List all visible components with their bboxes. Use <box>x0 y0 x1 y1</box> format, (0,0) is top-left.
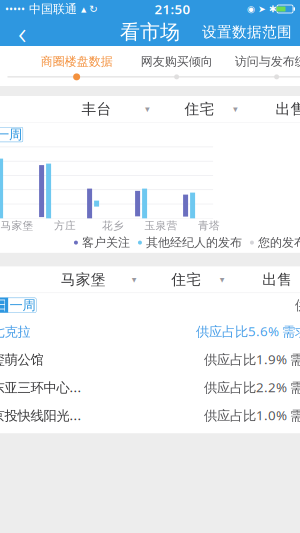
button[interactable]: 出售 <box>246 96 300 122</box>
button[interactable]: 2 玺萌公馆 <box>0 345 300 373</box>
staticText: 供应占比5.6% 需求占比11.6% <box>196 322 300 340</box>
staticText: 住宅 <box>184 100 214 118</box>
staticText: ••••• <box>5 2 25 16</box>
staticText: ▴ <box>81 3 86 15</box>
button[interactable]: 一周 <box>8 298 36 313</box>
button[interactable]: 商圈楼盘数据 <box>27 54 127 69</box>
button[interactable]: 1 七克拉 <box>0 317 300 345</box>
staticText: 出售 <box>275 100 300 118</box>
button[interactable]: 返回 <box>0 18 44 46</box>
staticText: 丰台 <box>81 100 111 118</box>
staticText: 设置数据范围 <box>202 23 292 41</box>
staticText: 出售 <box>262 271 292 289</box>
staticText: 一周 <box>0 126 22 143</box>
button[interactable]: 一周 <box>0 127 23 142</box>
staticText: 方庄 <box>54 219 76 232</box>
staticText: ▾ <box>132 274 137 285</box>
staticText: ↻ <box>86 3 98 15</box>
button[interactable]: 网友购买倾向 <box>127 54 227 69</box>
button[interactable]: 前日 <box>0 298 8 313</box>
staticText: 其他经纪人的发布 <box>142 235 242 250</box>
button[interactable]: 丰台 <box>40 96 158 122</box>
staticText: 供应占比1.9% 需求占比6.6% <box>204 350 300 368</box>
staticText: ◉ ➤ ✱ <box>247 4 277 14</box>
staticText: 商圈楼盘数据 <box>41 54 113 69</box>
button[interactable]: 马家堡 <box>27 267 145 293</box>
button[interactable]: 3 东亚三环中心... <box>0 373 300 401</box>
staticText: 1 七克拉 <box>0 322 30 340</box>
staticText: ▾ <box>233 104 238 114</box>
staticText: 4 京投快线阳光... <box>0 406 81 424</box>
button[interactable]: 住宅 <box>158 96 246 122</box>
staticText: 玉泉营 <box>145 219 178 232</box>
staticText: 住宅 <box>171 271 201 289</box>
button[interactable]: 4 京投快线阳光... <box>0 401 300 429</box>
staticText: 3 东亚三环中心... <box>0 378 81 396</box>
button[interactable]: 住宅 <box>145 267 233 293</box>
staticText: 中国联通 <box>25 2 81 16</box>
staticText: 2 玺萌公馆 <box>0 350 43 368</box>
staticText: 马家堡 <box>61 271 106 289</box>
staticText: 供应占比1.0% 需求占比3.4% <box>204 406 300 424</box>
staticText: 青塔 <box>198 219 220 232</box>
staticText: ▾ <box>145 104 150 114</box>
staticText: 21:50 <box>154 0 190 18</box>
button[interactable]: 出售 <box>233 267 300 293</box>
staticText: 访问与发布统计 <box>235 54 300 69</box>
staticText: 客户关注 <box>78 235 130 250</box>
staticText: ‹ <box>18 11 26 53</box>
staticText: 供不应求楼盘 <box>295 297 300 313</box>
button[interactable]: 设置数据范围 <box>194 18 300 46</box>
staticText: 马家堡 <box>1 219 34 232</box>
staticText: 您的发布 <box>254 235 300 250</box>
staticText: ▾ <box>220 274 225 285</box>
staticText: 前日 <box>0 297 7 313</box>
staticText: 看市场 <box>120 20 180 44</box>
button[interactable]: 访问与发布统计 <box>227 54 300 69</box>
staticText: 花乡 <box>102 219 124 232</box>
staticText: 一周 <box>9 297 35 313</box>
staticText: 供应占比2.2% 需求占比4.7% <box>204 378 300 396</box>
staticText: 网友购买倾向 <box>141 54 213 69</box>
